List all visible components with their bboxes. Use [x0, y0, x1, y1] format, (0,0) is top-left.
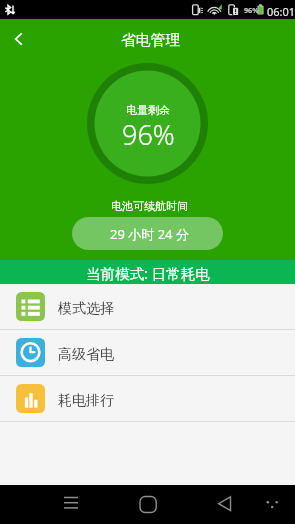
button[interactable]: Back: [0, 19, 38, 60]
staticText: 06:01: [267, 4, 295, 19]
staticText: 电量剩余: [126, 103, 170, 117]
staticText: 96%: [122, 116, 175, 153]
staticText: 96%: [244, 5, 259, 15]
button[interactable]: 模式选择: [0, 284, 295, 329]
staticText: 模式选择: [58, 300, 114, 318]
staticText: 高级省电: [58, 346, 114, 364]
button[interactable]: 高级省电: [0, 330, 295, 375]
staticText: 电池可续航时间: [111, 199, 188, 213]
staticText: 当前模式: 日常耗电: [86, 263, 210, 283]
button[interactable]: Split screen: [258, 485, 288, 524]
button[interactable]: Home: [127, 485, 167, 524]
staticText: 省电管理: [121, 31, 181, 50]
button[interactable]: 耗电排行: [0, 376, 295, 421]
staticText: 耗电排行: [58, 392, 114, 410]
button[interactable]: Back: [205, 485, 245, 524]
button[interactable]: 29 小时 24 分: [72, 217, 223, 250]
staticText: 29 小时 24 分: [110, 225, 189, 243]
button[interactable]: Menu: [51, 485, 91, 524]
